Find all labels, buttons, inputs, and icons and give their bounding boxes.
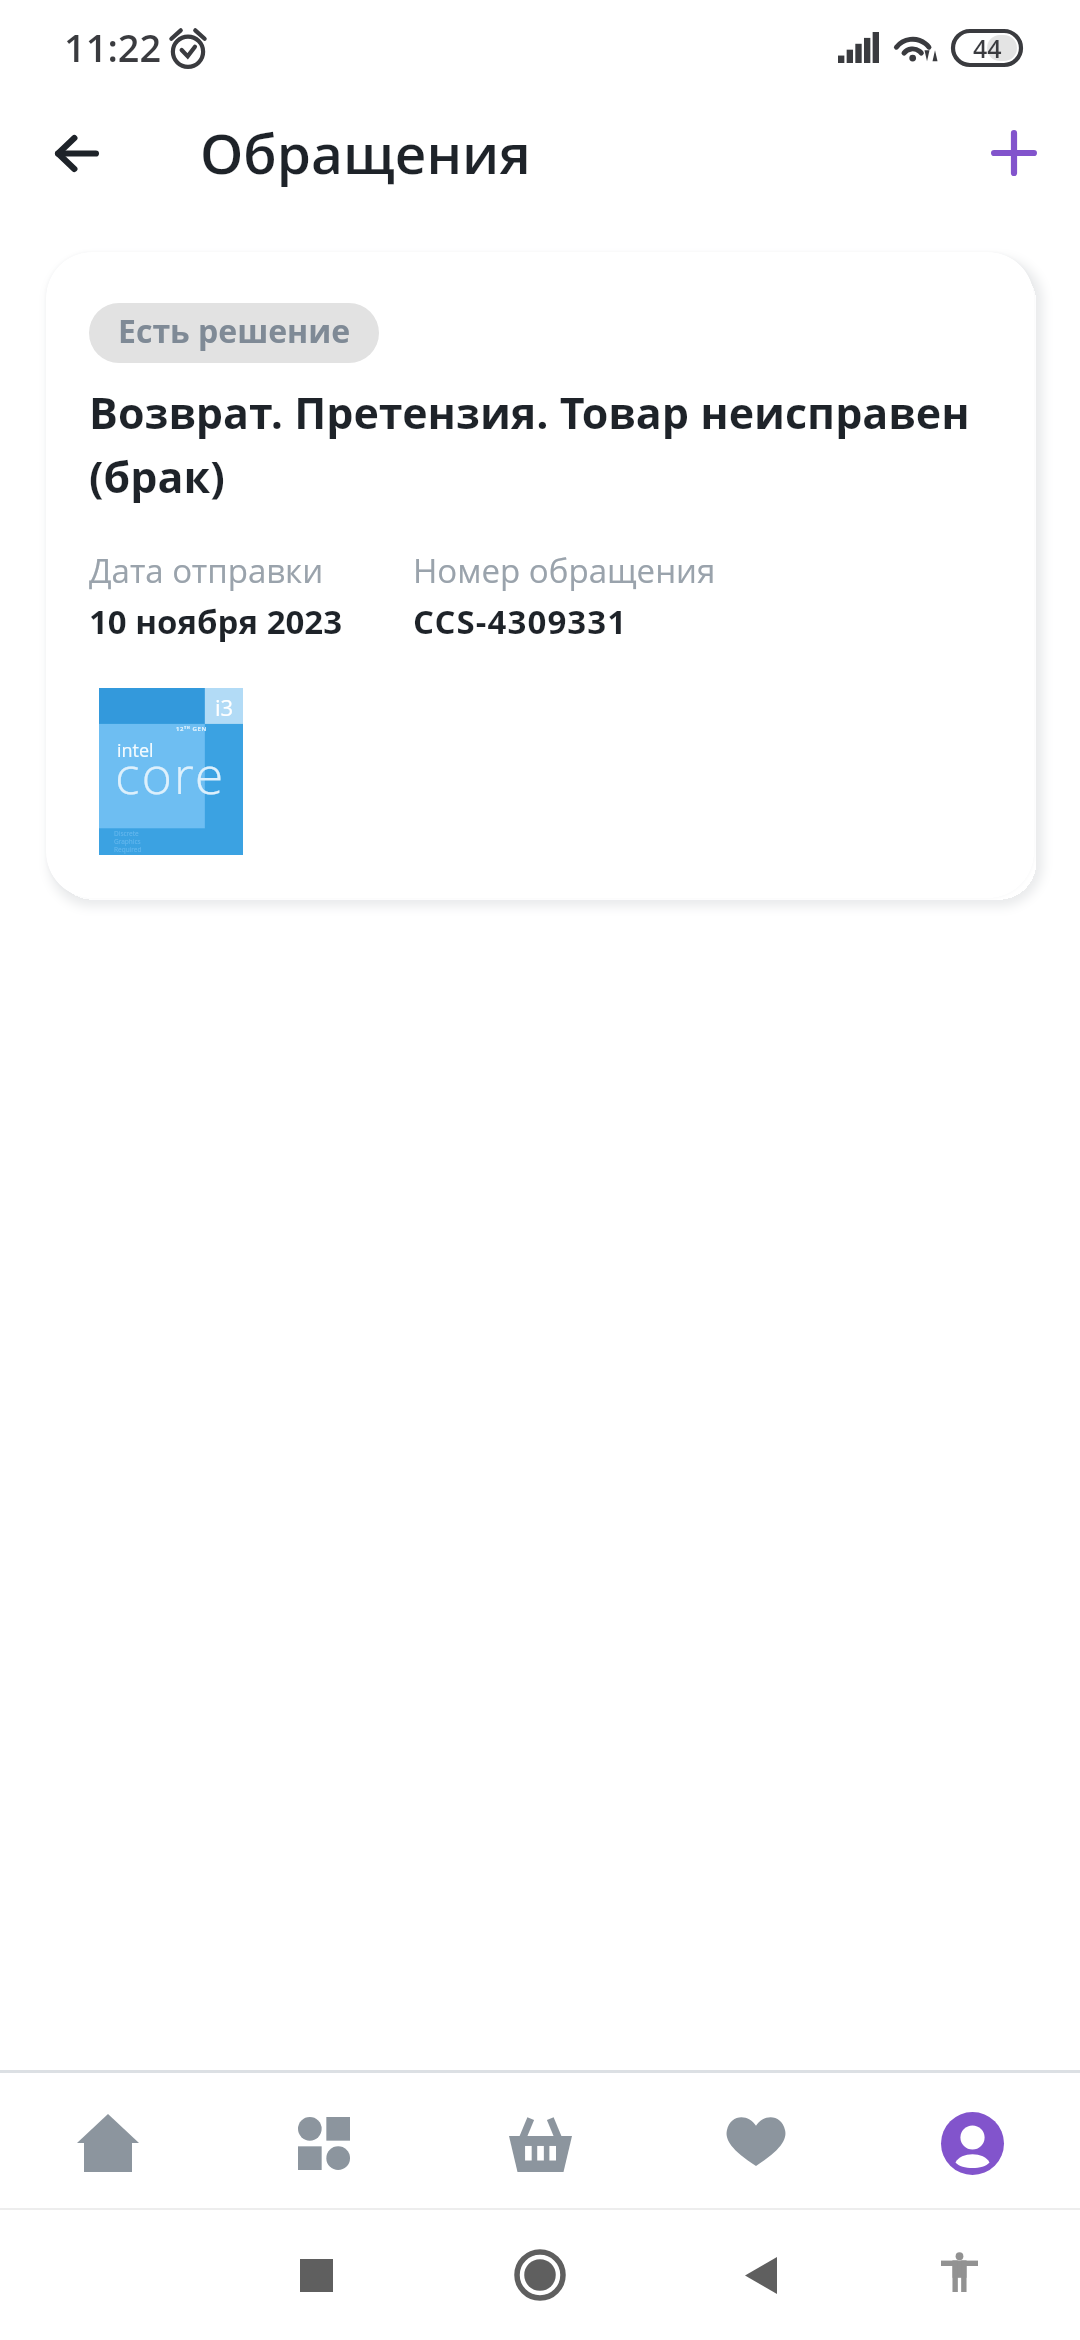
staticText: 11:22 <box>64 21 162 73</box>
button[interactable]: Back <box>700 2215 820 2335</box>
staticText: intel <box>117 738 154 763</box>
button[interactable]: Recent apps <box>256 2215 376 2335</box>
staticText: core <box>115 738 226 809</box>
staticText: i3 <box>215 692 234 722</box>
button[interactable]: Add <box>973 113 1053 193</box>
button[interactable]: Cart <box>432 2080 648 2206</box>
staticText: Discrete Graphics Required <box>114 829 142 854</box>
staticText: 12ᵀᴴ GEN <box>176 725 207 733</box>
button[interactable]: Profile <box>864 2080 1080 2206</box>
staticText: Дата отправки <box>89 548 324 593</box>
button[interactable]: Catalog <box>216 2080 432 2206</box>
staticText: 44 <box>973 31 1002 65</box>
staticText: 10 ноября 2023 <box>89 599 342 644</box>
staticText: CCS-4309331 <box>413 599 628 644</box>
button[interactable]: Home <box>0 2080 216 2206</box>
staticText: Возврат. Претензия. Товар неисправен (бр… <box>89 383 1014 506</box>
button[interactable]: Home <box>480 2215 600 2335</box>
button[interactable]: Back <box>32 113 112 193</box>
button[interactable]: Favorites <box>648 2080 864 2206</box>
button[interactable]: Есть решение <box>46 252 1034 898</box>
staticText: Обращения <box>200 115 531 190</box>
staticText: Есть решение <box>118 309 351 353</box>
button[interactable]: Accessibility <box>900 2215 1020 2335</box>
staticText: Номер обращения <box>413 548 716 593</box>
